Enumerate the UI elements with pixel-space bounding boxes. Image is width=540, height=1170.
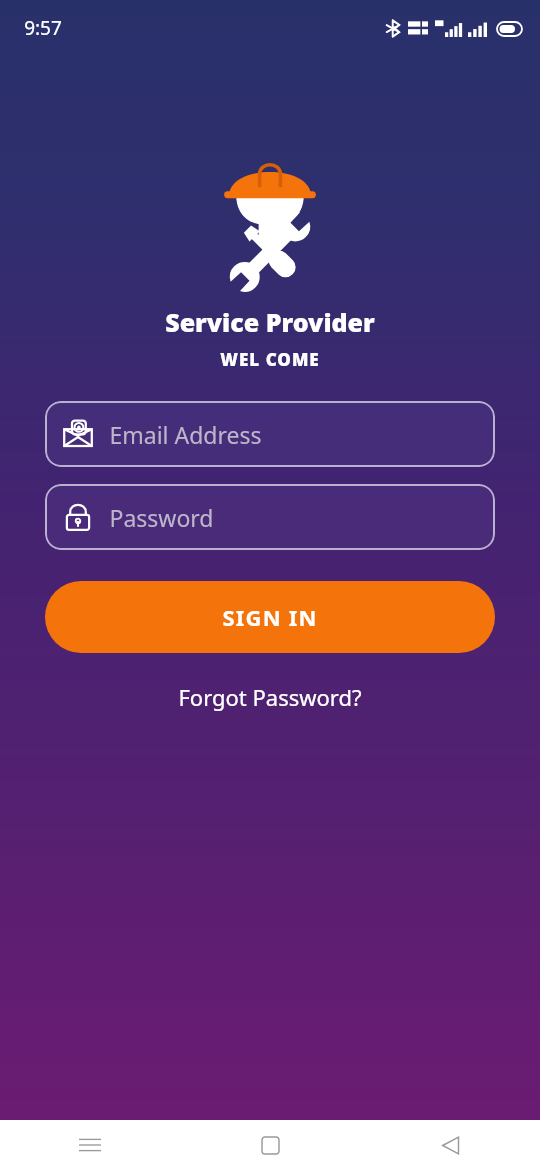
staticText: WEL COME — [220, 348, 320, 371]
staticText: Forgot Password? — [178, 682, 362, 712]
other: Password — [63, 502, 93, 532]
staticText: Email Address — [109, 419, 262, 450]
button[interactable]: Password — [45, 484, 495, 550]
other: Service Provider logo — [205, 156, 335, 301]
button[interactable]: Recent apps — [0, 1120, 180, 1170]
button[interactable]: Home — [180, 1120, 360, 1170]
button[interactable]: Email — [45, 401, 495, 467]
button[interactable]: Forgot Password? — [168, 677, 372, 717]
other: Email — [63, 419, 93, 449]
button[interactable]: SIGN IN — [45, 581, 495, 653]
staticText: SIGN IN — [222, 602, 318, 632]
staticText: Password — [109, 502, 214, 533]
button[interactable]: Back — [360, 1120, 540, 1170]
staticText: 9:57 — [24, 15, 62, 41]
staticText: Service Provider — [165, 305, 375, 339]
